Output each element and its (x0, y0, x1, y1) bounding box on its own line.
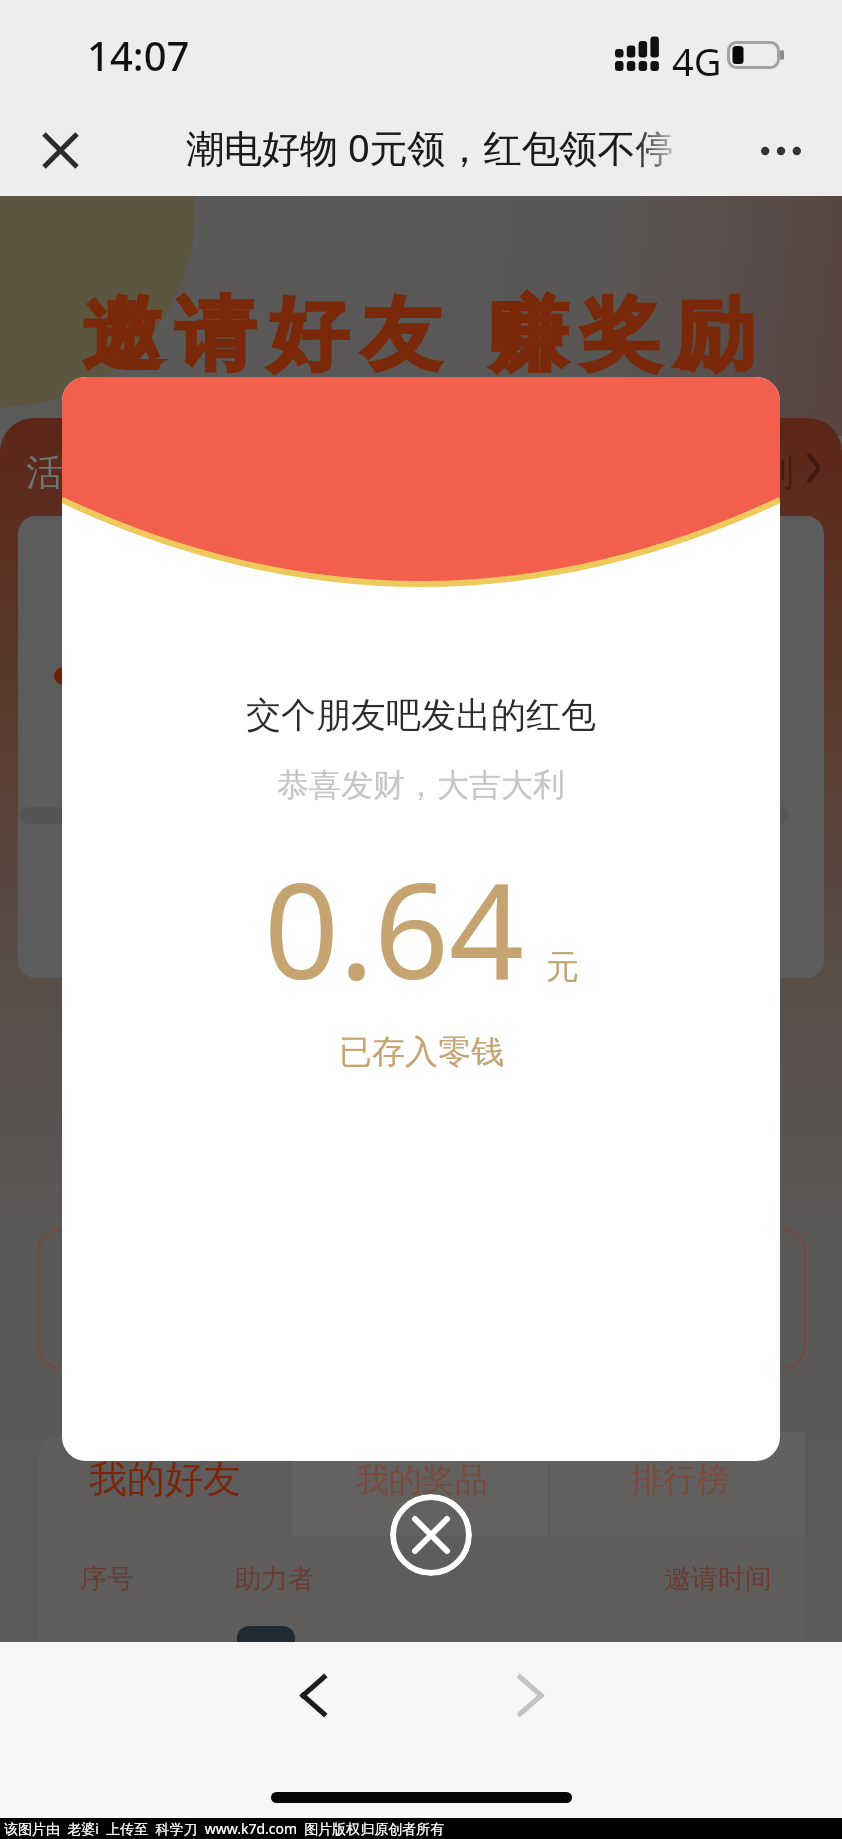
staticText: 潮电好物 0元领，红包领不停 (186, 121, 674, 173)
button[interactable]: Back (270, 1652, 356, 1738)
button[interactable]: Close (390, 1494, 472, 1576)
staticText: 活动规则 (26, 449, 174, 496)
staticText: 我的好友 (89, 1455, 241, 1503)
button[interactable]: More options (735, 105, 827, 196)
staticText: 14:07 (87, 28, 190, 82)
staticText: 元 (546, 946, 579, 988)
staticText: 排行榜 (630, 1459, 729, 1501)
staticText: 活动规则 (646, 449, 794, 496)
staticText: 恭喜发财，大吉大利 (277, 765, 565, 805)
button[interactable]: Close (14, 105, 106, 196)
staticText: 已存入零钱 (339, 1031, 504, 1073)
staticText: 邀请时间 (664, 1562, 772, 1596)
staticText: 4G (672, 35, 722, 87)
staticText: 助力者 (234, 1562, 315, 1596)
staticText: 邀请好友 赚奖励 (82, 276, 767, 385)
staticText: 序号 (80, 1562, 134, 1596)
button[interactable]: Forward (487, 1652, 573, 1738)
staticText: 我的奖品 (356, 1459, 488, 1501)
staticText: 交个朋友吧发出的红包 (246, 693, 596, 737)
staticText: 该图片由 老婆i 上传至 科学刀 www.k7d.com 图片版权归原创者所有 (4, 1819, 445, 1838)
staticText: 0.64 (264, 839, 524, 1017)
